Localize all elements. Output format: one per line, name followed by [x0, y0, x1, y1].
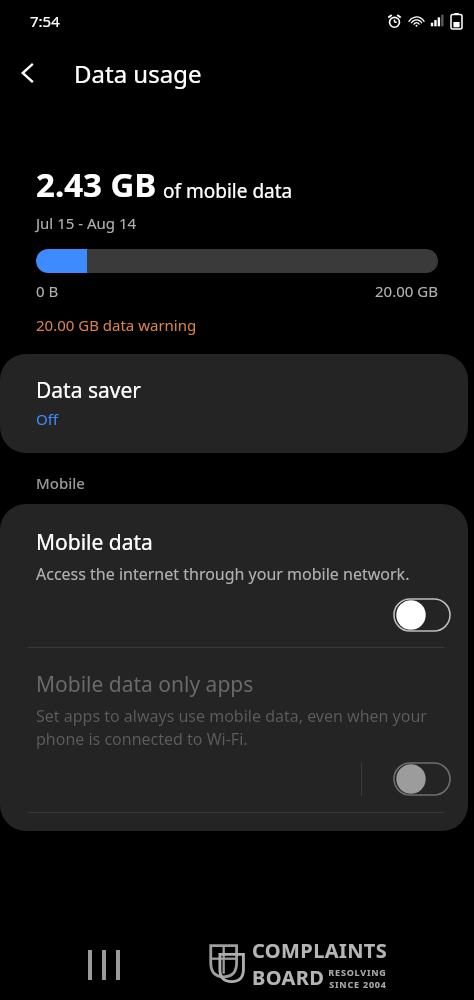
staticText: Set apps to always use mobile data, even… [36, 705, 450, 750]
staticText: Mobile data only apps [36, 670, 254, 699]
button[interactable]: Data saver [0, 354, 468, 453]
staticText: 2.43 GB [36, 162, 157, 207]
staticText: 20.00 GB [375, 281, 438, 301]
button[interactable]: Back [0, 45, 56, 101]
staticText: Data usage [74, 57, 202, 90]
button[interactable]: Mobile data [0, 504, 468, 647]
staticText: RESOLVING [328, 966, 387, 978]
staticText: Access the internet through your mobile … [36, 563, 410, 585]
button[interactable]: Toggle [394, 763, 450, 795]
staticText: SINCE 2004 [329, 978, 387, 990]
staticText: BOARD [252, 964, 325, 991]
staticText: Jul 15 - Aug 14 [36, 213, 137, 233]
staticText: 0 B [36, 281, 59, 301]
staticText: of mobile data [163, 178, 293, 204]
staticText: Off [36, 409, 59, 429]
button[interactable]: Recents [88, 950, 120, 980]
staticText: 20.00 GB data warning [36, 315, 197, 335]
button[interactable]: Toggle [394, 599, 450, 631]
button[interactable]: Mobile data only apps [0, 648, 468, 812]
staticText: Mobile data [36, 528, 153, 557]
staticText: 7:54 [30, 11, 60, 31]
staticText: COMPLAINTS [252, 937, 388, 964]
staticText: Data saver [36, 376, 141, 405]
staticText: Mobile [36, 473, 85, 493]
